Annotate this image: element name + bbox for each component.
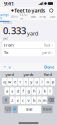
button[interactable]: s <box>10 87 15 95</box>
button[interactable]: n <box>37 96 42 104</box>
button[interactable]: f <box>21 87 25 95</box>
staticText: Result <box>3 21 12 24</box>
staticText: foot <box>44 42 50 48</box>
staticText: Length <box>0 13 9 20</box>
staticText: Done <box>44 64 54 70</box>
button[interactable]: h <box>31 87 36 95</box>
staticText: e <box>14 79 16 84</box>
staticText: y <box>30 79 32 84</box>
button[interactable]: p <box>50 78 55 86</box>
staticText: 0.333 <box>3 24 26 37</box>
staticText: yard <box>5 72 13 77</box>
staticText: From <box>4 42 14 48</box>
staticText: To <box>4 50 8 55</box>
button[interactable]: u <box>34 78 39 86</box>
staticText: yard <box>3 37 8 40</box>
staticText: ^ <box>3 64 5 70</box>
button[interactable]: r <box>18 78 23 86</box>
staticText: p <box>52 79 54 84</box>
button[interactable]: i <box>40 78 44 86</box>
staticText: Yard <box>43 72 51 77</box>
button[interactable]: o <box>45 78 50 86</box>
staticText: l <box>50 88 51 94</box>
staticText: w <box>8 79 11 84</box>
staticText: q <box>3 79 5 84</box>
staticText: n <box>38 97 40 103</box>
button[interactable]: b <box>31 96 36 104</box>
staticText: m <box>43 97 47 103</box>
staticText: t <box>25 79 26 84</box>
staticText: v <box>27 97 29 103</box>
button[interactable]: Previous field <box>2 64 7 70</box>
button[interactable]: j <box>37 87 42 95</box>
button[interactable]: Done <box>43 64 55 70</box>
button[interactable]: v <box>26 96 31 104</box>
staticText: a <box>6 88 8 94</box>
button[interactable]: Temp <box>38 14 47 20</box>
button[interactable]: Data <box>47 14 57 20</box>
staticText: d <box>17 88 19 94</box>
staticText: Temp <box>39 15 46 18</box>
button[interactable]: k <box>42 87 47 95</box>
staticText: o <box>46 79 48 84</box>
button[interactable]: Length <box>0 12 9 22</box>
button[interactable]: t <box>23 78 28 86</box>
staticText: h <box>33 88 35 94</box>
button[interactable]: 🌐 <box>12 106 17 113</box>
button[interactable]: To <box>2 49 55 56</box>
staticText: b <box>33 97 35 103</box>
button[interactable]: c <box>21 96 25 104</box>
staticText: v <box>8 64 10 70</box>
button[interactable]: z <box>10 96 15 104</box>
staticText: ⇧ <box>4 98 7 102</box>
staticText: yard <box>42 50 50 55</box>
staticText: r <box>19 79 21 84</box>
button[interactable]: y <box>29 78 34 86</box>
staticText: s <box>11 88 13 94</box>
button[interactable]: x <box>15 96 20 104</box>
button[interactable]: m <box>42 96 47 104</box>
button[interactable]: 123 <box>4 106 12 113</box>
staticText: z <box>11 97 13 103</box>
staticText: Volume <box>20 13 28 20</box>
staticText: Area <box>11 15 17 18</box>
button[interactable]: q <box>2 78 7 86</box>
button[interactable]: w <box>7 78 12 86</box>
staticText: c <box>22 97 24 103</box>
button[interactable]: a <box>4 87 9 95</box>
button[interactable]: Volume <box>19 12 28 22</box>
button[interactable]: Settings <box>49 8 54 13</box>
staticText: f <box>23 88 24 94</box>
button[interactable]: ⇧ <box>2 96 9 104</box>
button[interactable]: Area <box>9 14 19 20</box>
button[interactable]: l <box>48 87 52 95</box>
staticText: space <box>26 108 33 111</box>
staticText: x <box>17 97 19 103</box>
staticText: Data <box>50 15 55 18</box>
button[interactable]: g <box>26 87 31 95</box>
staticText: 🌐 <box>13 108 16 111</box>
button[interactable]: Mass <box>28 14 38 20</box>
button[interactable]: return <box>42 106 53 113</box>
staticText: > <box>51 50 53 55</box>
staticText: 9:41 <box>4 0 14 7</box>
staticText: > <box>51 42 53 48</box>
button[interactable]: d <box>15 87 20 95</box>
staticText: yards <box>23 72 33 77</box>
button[interactable]: space <box>18 106 41 113</box>
button[interactable]: From <box>2 41 55 48</box>
staticText: Mass <box>31 15 36 18</box>
staticText: g <box>27 88 29 94</box>
staticText: feet to yards <box>15 7 46 14</box>
staticText: j <box>39 88 40 94</box>
staticText: return <box>43 108 52 111</box>
staticText: yard <box>27 30 38 37</box>
button[interactable]: e <box>13 78 17 86</box>
staticText: u <box>36 79 38 84</box>
staticText: k <box>44 88 46 94</box>
button[interactable]: Next field <box>7 64 12 70</box>
button[interactable]: ⌫ <box>48 96 55 104</box>
staticText: ⌫ <box>48 98 54 102</box>
staticText: 123 <box>5 108 11 111</box>
